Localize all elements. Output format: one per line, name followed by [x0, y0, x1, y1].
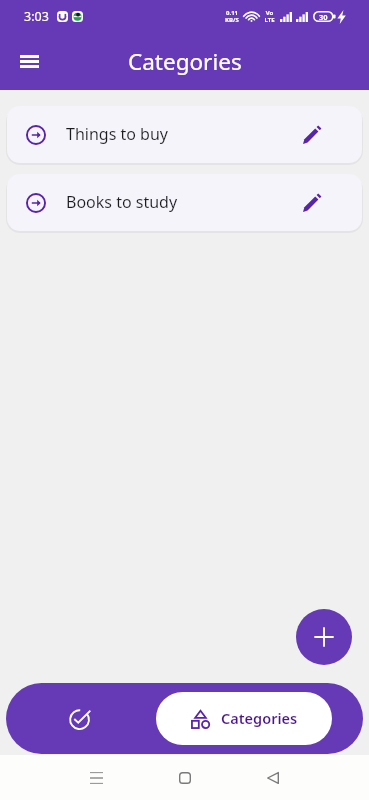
button[interactable]: Add: [296, 609, 352, 665]
staticText: 30: [319, 12, 328, 22]
button[interactable]: Home: [162, 761, 207, 793]
button[interactable]: Menu: [9, 41, 49, 81]
staticText: 3:03: [24, 8, 49, 25]
staticText: Categories: [221, 708, 298, 728]
button[interactable]: Edit: [291, 182, 333, 224]
staticText: Vo LTE: [264, 9, 275, 24]
button[interactable]: Things to buy: [7, 106, 362, 163]
staticText: Things to buy: [66, 123, 168, 145]
button[interactable]: Tasks: [42, 696, 118, 742]
staticText: 0.11 KB/S: [225, 9, 239, 24]
button[interactable]: Recent apps: [74, 761, 119, 793]
button[interactable]: Back: [250, 761, 295, 793]
staticText: Books to study: [66, 191, 178, 213]
staticText: Categories: [128, 46, 242, 77]
button[interactable]: Categories: [156, 692, 332, 745]
button[interactable]: Edit: [291, 114, 333, 156]
button[interactable]: Books to study: [7, 174, 362, 231]
